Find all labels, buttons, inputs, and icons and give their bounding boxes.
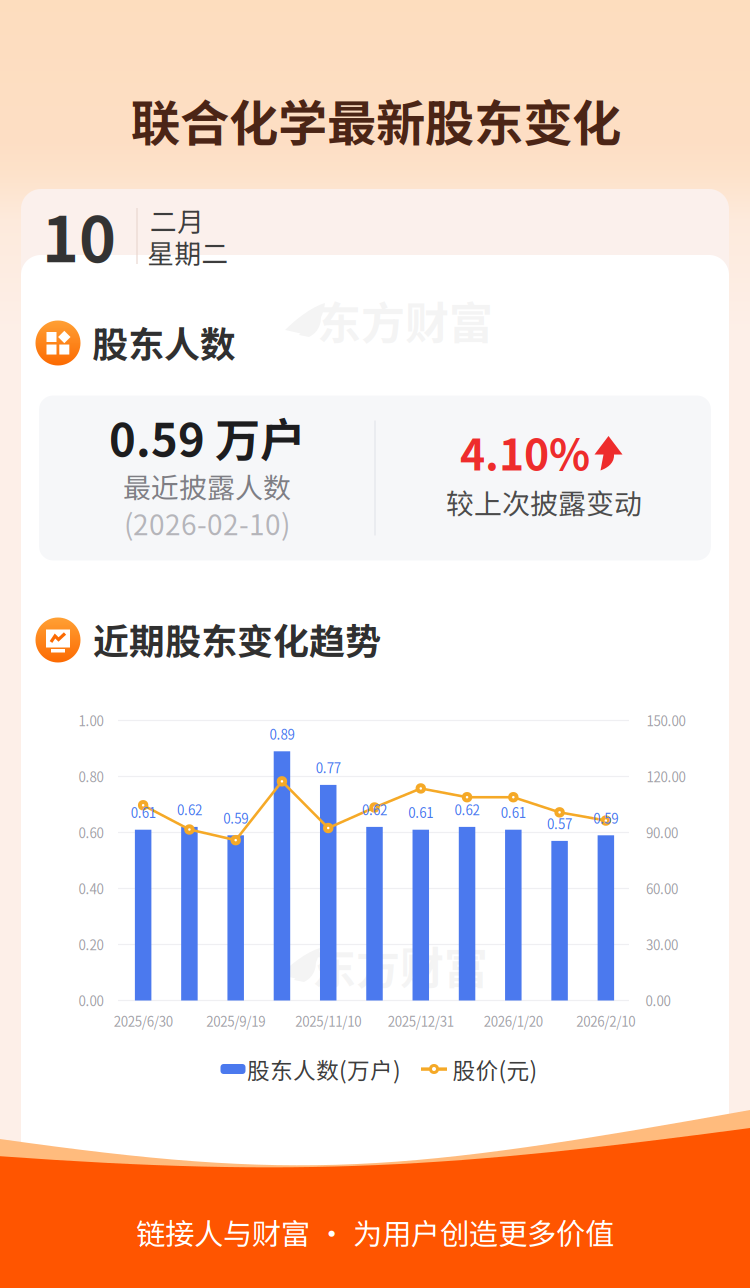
staticText: 0.00 [645, 991, 670, 1010]
staticText: 2025/11/10 [295, 1011, 361, 1031]
staticText: 0.62 [454, 800, 479, 819]
staticText: 联合化学最新股东变化 [131, 84, 621, 156]
staticText: 60.00 [646, 879, 678, 898]
staticText: 较上次披露变动 [446, 482, 642, 522]
staticText: 0.61 [408, 803, 433, 822]
staticText: 0.80 [78, 767, 103, 786]
staticText: 0.20 [78, 935, 103, 954]
staticText: 90.00 [646, 823, 678, 842]
staticText: 近期股东变化趋势 [93, 613, 381, 665]
staticText: 2025/6/30 [114, 1011, 173, 1031]
staticText: 最近披露人数 [123, 466, 291, 506]
staticText: 链接人与财富 · 为用户创造更多价值 [136, 1211, 614, 1253]
staticText: 10 [42, 190, 116, 280]
staticText: 2026/2/10 [576, 1011, 635, 1031]
staticText: 0.77 [316, 758, 341, 777]
staticText: 2026/1/20 [484, 1011, 543, 1031]
staticText: 0.60 [78, 823, 103, 842]
staticText: 0.59 [223, 808, 248, 827]
staticText: 30.00 [646, 935, 678, 954]
staticText: 星期二 [147, 233, 228, 271]
staticText: 0.61 [131, 803, 156, 822]
staticText: 120.00 [646, 767, 685, 786]
staticText: 0.89 [269, 724, 294, 743]
staticText: 0.59 万户 [109, 404, 305, 470]
staticText: 0.57 [547, 814, 572, 833]
staticText: 2025/12/31 [388, 1011, 454, 1031]
staticText: 二月 [150, 201, 204, 239]
staticText: 股东人数(万户) [247, 1053, 401, 1085]
staticText: 0.62 [362, 800, 387, 819]
staticText: 0.61 [501, 803, 526, 822]
staticText: (2026-02-10) [124, 503, 290, 543]
staticText: 东方财富 [312, 933, 488, 997]
staticText: 0.59 [593, 808, 618, 827]
staticText: 0.62 [177, 800, 202, 819]
staticText: 4.10% [460, 421, 590, 483]
staticText: 股东人数 [92, 316, 236, 368]
staticText: 0.40 [78, 879, 103, 898]
staticText: 0.00 [78, 991, 103, 1010]
staticText: 2025/9/19 [206, 1011, 265, 1031]
staticText: 1.00 [78, 711, 103, 730]
staticText: 股价(元) [452, 1053, 537, 1085]
staticText: 东方财富 [317, 288, 493, 352]
staticText: 150.00 [646, 711, 685, 730]
